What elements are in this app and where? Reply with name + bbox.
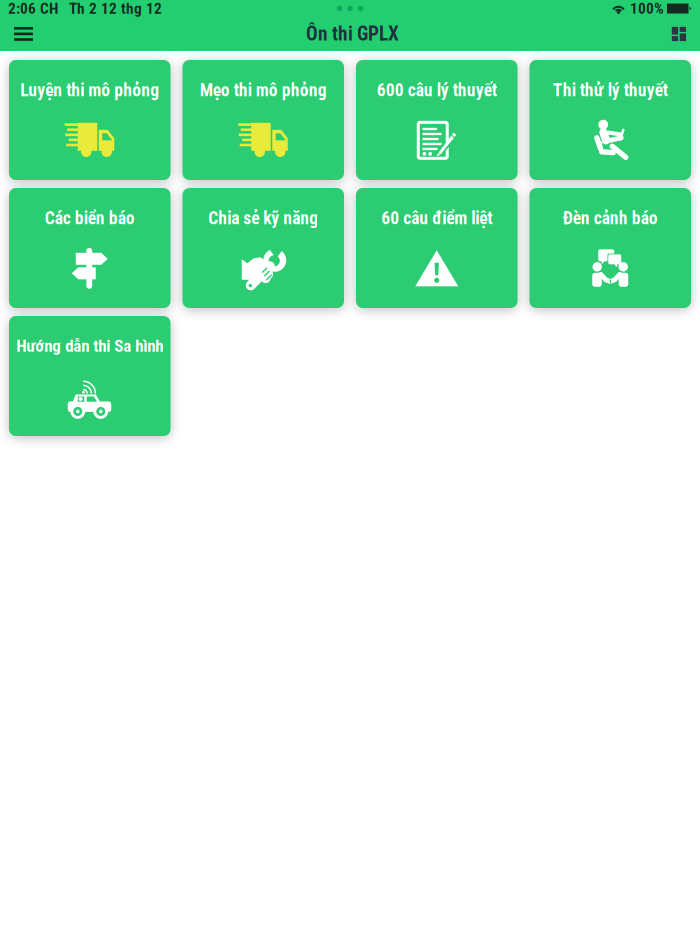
button[interactable]: Các biển báo xyxy=(9,188,170,308)
staticText: 2:06 CH xyxy=(8,0,58,17)
button[interactable]: Đèn cảnh báo xyxy=(529,188,691,308)
button[interactable]: Mẹo thi mô phỏng xyxy=(182,60,344,180)
button[interactable]: Grid layout xyxy=(660,18,700,50)
staticText: Thi thử lý thuyết xyxy=(553,80,668,101)
staticText: Ôn thi GPLX xyxy=(306,23,399,45)
staticText: Luyện thi mô phỏng xyxy=(20,80,159,101)
button[interactable]: Luyện thi mô phỏng xyxy=(9,60,170,180)
button[interactable]: Chia sẻ kỹ năng xyxy=(182,188,344,308)
button[interactable]: Thi thử lý thuyết xyxy=(529,60,691,180)
staticText: 100% xyxy=(626,0,664,17)
staticText: 600 câu lý thuyết xyxy=(377,80,497,101)
staticText: Mẹo thi mô phỏng xyxy=(200,80,327,101)
staticText: Th 2 12 thg 12 xyxy=(58,0,162,17)
staticText: Hướng dẫn thi Sa hình xyxy=(16,336,163,356)
staticText: Các biển báo xyxy=(45,208,135,229)
staticText: 60 câu điểm liệt xyxy=(381,208,492,229)
button[interactable]: 60 câu điểm liệt xyxy=(356,188,517,308)
button[interactable]: 600 câu lý thuyết xyxy=(356,60,517,180)
button[interactable]: Hướng dẫn thi Sa hình xyxy=(9,316,170,436)
staticText: Đèn cảnh báo xyxy=(563,208,658,229)
staticText: Chia sẻ kỹ năng xyxy=(208,208,318,229)
button[interactable]: Menu xyxy=(0,18,45,50)
